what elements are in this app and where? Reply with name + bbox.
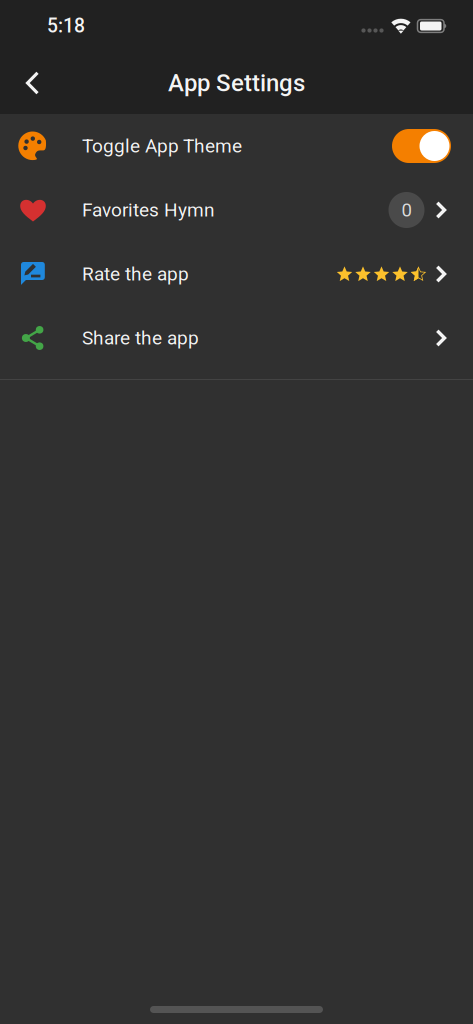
button[interactable]: Rate the app [0, 242, 473, 306]
button[interactable]: Back [12, 58, 53, 108]
staticText: Toggle App Theme [82, 135, 242, 157]
button[interactable]: Share the app [0, 306, 473, 370]
button[interactable]: Favorites Hymn [0, 178, 473, 242]
staticText: App Settings [168, 69, 305, 97]
staticText: 0 [401, 199, 411, 221]
staticText: 5:18 [47, 15, 85, 37]
button[interactable]: Toggle App Theme [0, 114, 473, 178]
staticText: Share the app [82, 327, 199, 349]
staticText: Favorites Hymn [82, 199, 215, 221]
staticText: Rate the app [82, 263, 189, 285]
